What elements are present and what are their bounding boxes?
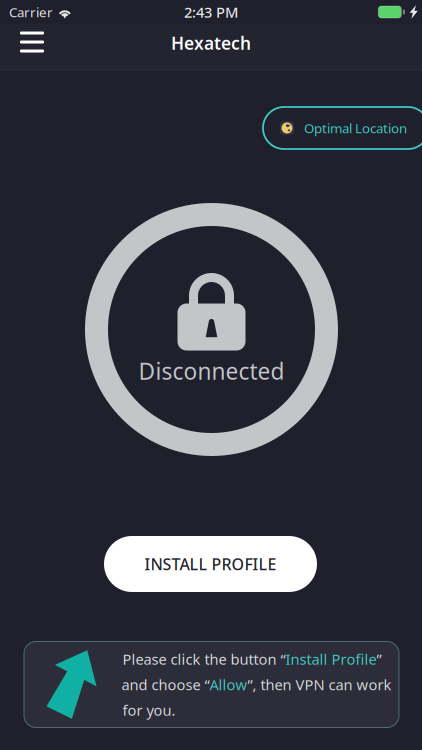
staticText: Install Profile (285, 649, 376, 669)
staticText: Optimal Location (304, 119, 407, 137)
staticText: INSTALL PROFILE (144, 553, 276, 575)
staticText: Hexatech (171, 31, 251, 54)
button[interactable]: Optimal Location (263, 107, 422, 149)
button[interactable]: INSTALL PROFILE (104, 536, 317, 592)
staticText: Allow (209, 675, 247, 694)
staticText: ”, then VPN can work (247, 675, 391, 694)
staticText: Carrier (9, 3, 53, 21)
staticText: Please click the button “ (122, 649, 285, 669)
staticText: and choose “ (121, 675, 209, 694)
staticText: ” (376, 649, 381, 669)
button[interactable]: Menu (4, 24, 60, 66)
staticText: Disconnected (138, 356, 284, 386)
staticText: 2:43 PM (184, 2, 238, 22)
staticText: for you. (122, 700, 175, 720)
